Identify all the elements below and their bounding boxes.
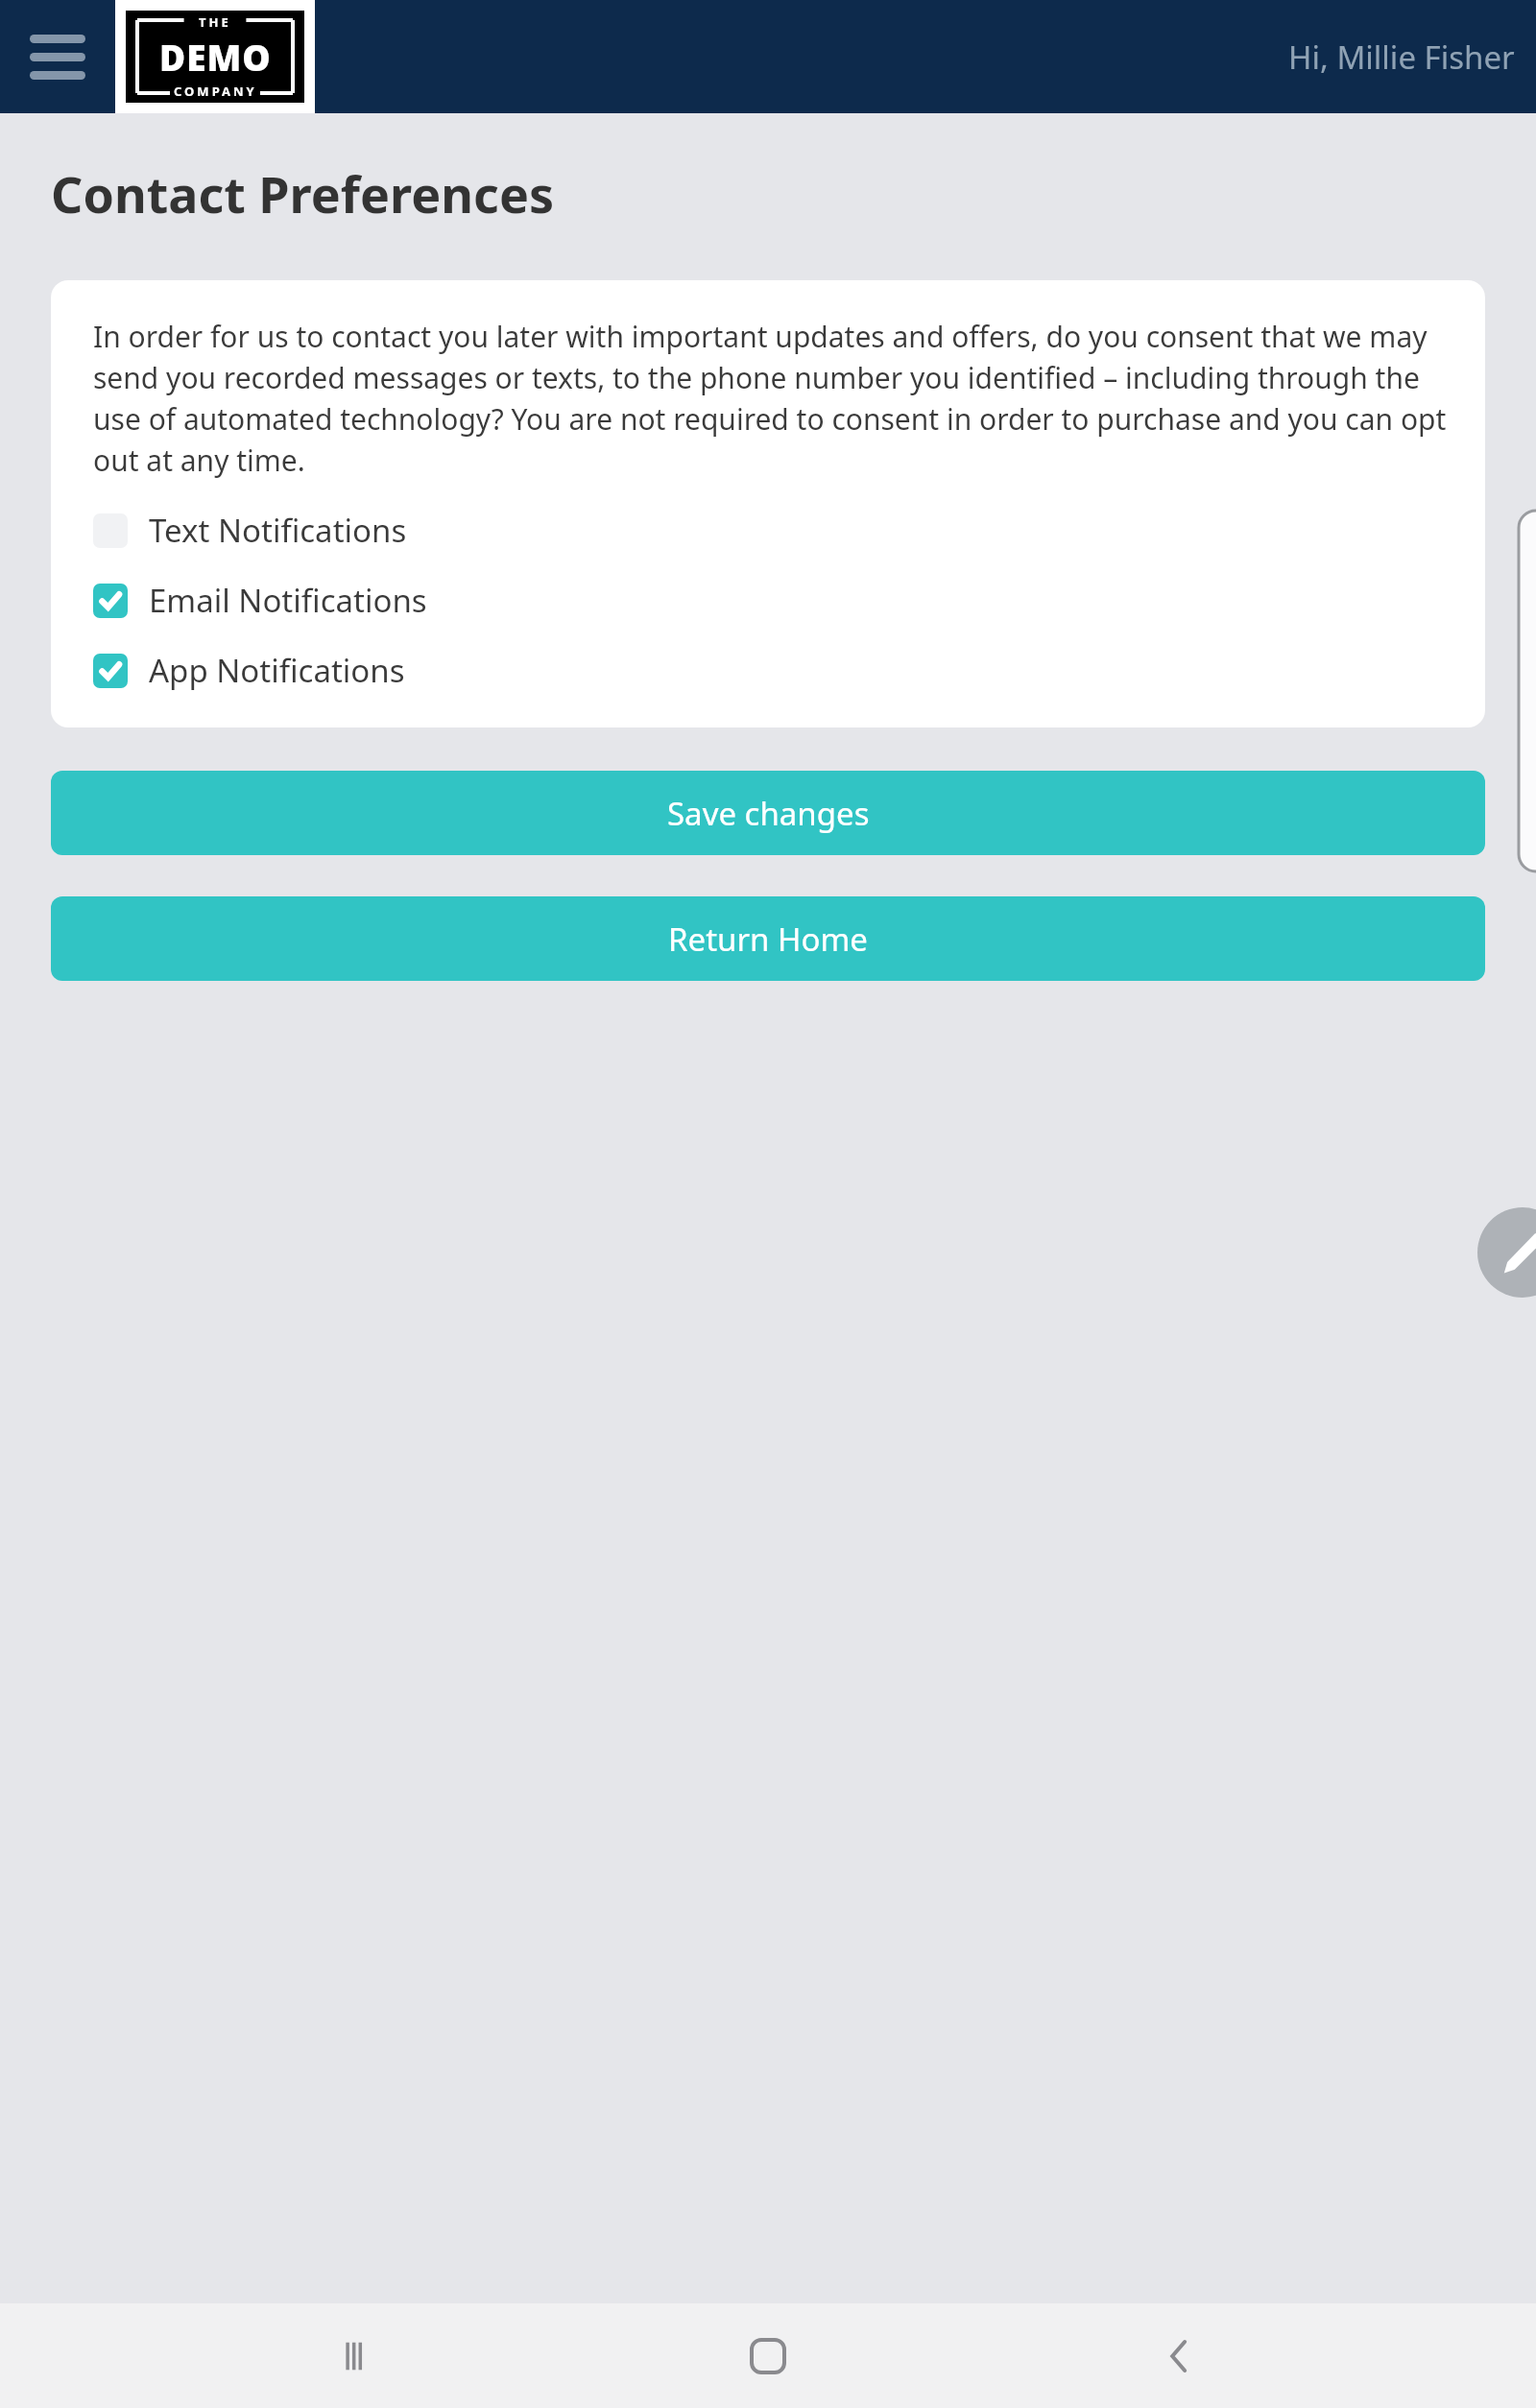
button[interactable]: App Notifications bbox=[93, 649, 1447, 692]
staticText: Return Home bbox=[668, 918, 868, 961]
staticText: App Notifications bbox=[149, 649, 405, 692]
button[interactable]: Menu bbox=[15, 14, 100, 99]
staticText: Email Notifications bbox=[149, 579, 427, 622]
button[interactable]: Text Notifications bbox=[93, 509, 1447, 552]
button[interactable]: Return Home bbox=[51, 896, 1485, 981]
staticText: THE bbox=[199, 13, 231, 31]
button[interactable]: Save changes bbox=[51, 771, 1485, 855]
staticText: Contact Preferences bbox=[51, 159, 555, 227]
button[interactable]: Email Notifications bbox=[93, 579, 1447, 622]
staticText: Text Notifications bbox=[149, 509, 407, 552]
button[interactable]: Home bbox=[715, 2303, 821, 2408]
staticText: Save changes bbox=[667, 792, 870, 835]
button[interactable]: Recent apps bbox=[305, 2303, 411, 2408]
button[interactable]: Edit bbox=[1477, 1207, 1536, 1298]
button[interactable]: Back bbox=[1126, 2303, 1232, 2408]
staticText: DEMO bbox=[159, 33, 272, 81]
staticText: COMPANY bbox=[174, 83, 257, 100]
button[interactable]: Hi, Millie Fisher bbox=[1288, 36, 1515, 79]
button[interactable]: The Demo Company logo bbox=[115, 0, 315, 113]
staticText: In order for us to contact you later wit… bbox=[93, 317, 1447, 480]
